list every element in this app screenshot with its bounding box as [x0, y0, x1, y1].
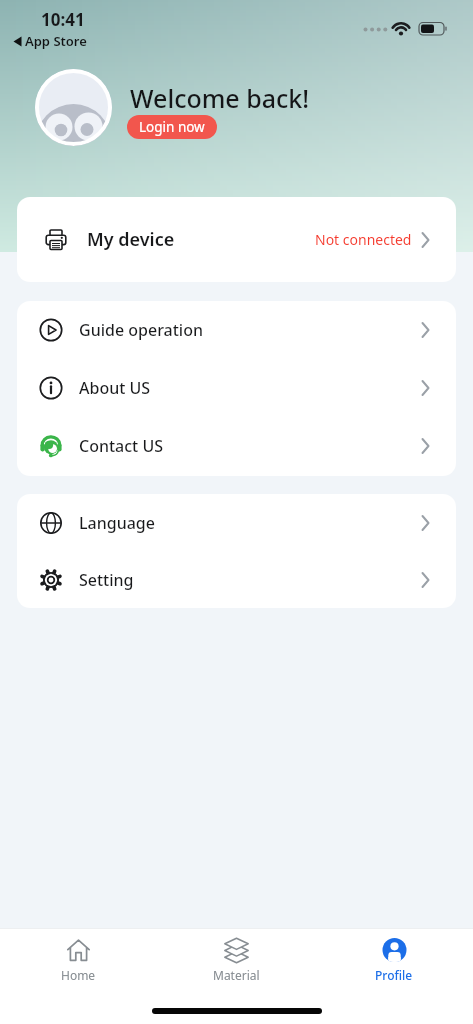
button[interactable]: Profile [315, 929, 473, 996]
staticText: Guide operation [79, 319, 203, 341]
staticText: Profile [375, 967, 413, 983]
staticText: About US [79, 377, 151, 399]
staticText: Home [61, 967, 96, 983]
staticText: Setting [79, 569, 134, 591]
staticText: Not connected [315, 230, 412, 249]
staticText: Contact US [79, 435, 164, 457]
button[interactable]: Home [0, 929, 157, 996]
staticText: Material [213, 967, 260, 983]
staticText: My device [87, 227, 175, 252]
button[interactable]: App Store [13, 32, 87, 50]
button[interactable]: Guide operation [17, 301, 456, 359]
staticText: 10:41 [41, 8, 85, 31]
button[interactable]: My device [17, 197, 456, 282]
staticText: App Store [25, 32, 87, 50]
staticText: Language [79, 512, 155, 534]
button[interactable]: Setting [17, 552, 456, 608]
button[interactable]: About US [17, 359, 456, 417]
button[interactable]: Material [157, 929, 315, 996]
staticText: Welcome back! [130, 81, 310, 115]
button[interactable]: Language [17, 494, 456, 552]
button[interactable]: Login now [127, 115, 217, 139]
button[interactable]: Contact US [17, 417, 456, 475]
staticText: Login now [139, 118, 205, 136]
